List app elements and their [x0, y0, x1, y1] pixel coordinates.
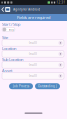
staticText: (null) — [29, 41, 37, 45]
button[interactable]: Back — [1, 5, 5, 14]
staticText: (null) — [29, 52, 37, 56]
staticText: 12:31 — [56, 1, 65, 4]
button[interactable]: Outstanding J — [35, 83, 60, 89]
staticText: Start / Stop — [2, 21, 20, 27]
staticText: Sub Location — [2, 57, 23, 62]
staticText: Outstanding J — [38, 84, 57, 88]
staticText: Stop — [8, 28, 14, 31]
staticText: Asset — [2, 68, 12, 73]
staticText: (null) — [29, 63, 37, 67]
staticText: Agility For Android — [13, 8, 40, 11]
staticText: Job Process — [13, 84, 29, 88]
staticText: Fields are required — [17, 15, 50, 20]
button[interactable]: (null) — [2, 62, 64, 68]
button[interactable]: (null) — [2, 51, 64, 57]
button[interactable]: Stop — [2, 27, 15, 32]
button[interactable]: (null) — [2, 40, 64, 46]
staticText: (null) — [29, 74, 37, 78]
button[interactable]: Job Process — [9, 83, 33, 89]
staticText: Site — [2, 35, 8, 40]
button[interactable]: (null) — [2, 73, 64, 79]
staticText: Location — [2, 46, 16, 51]
